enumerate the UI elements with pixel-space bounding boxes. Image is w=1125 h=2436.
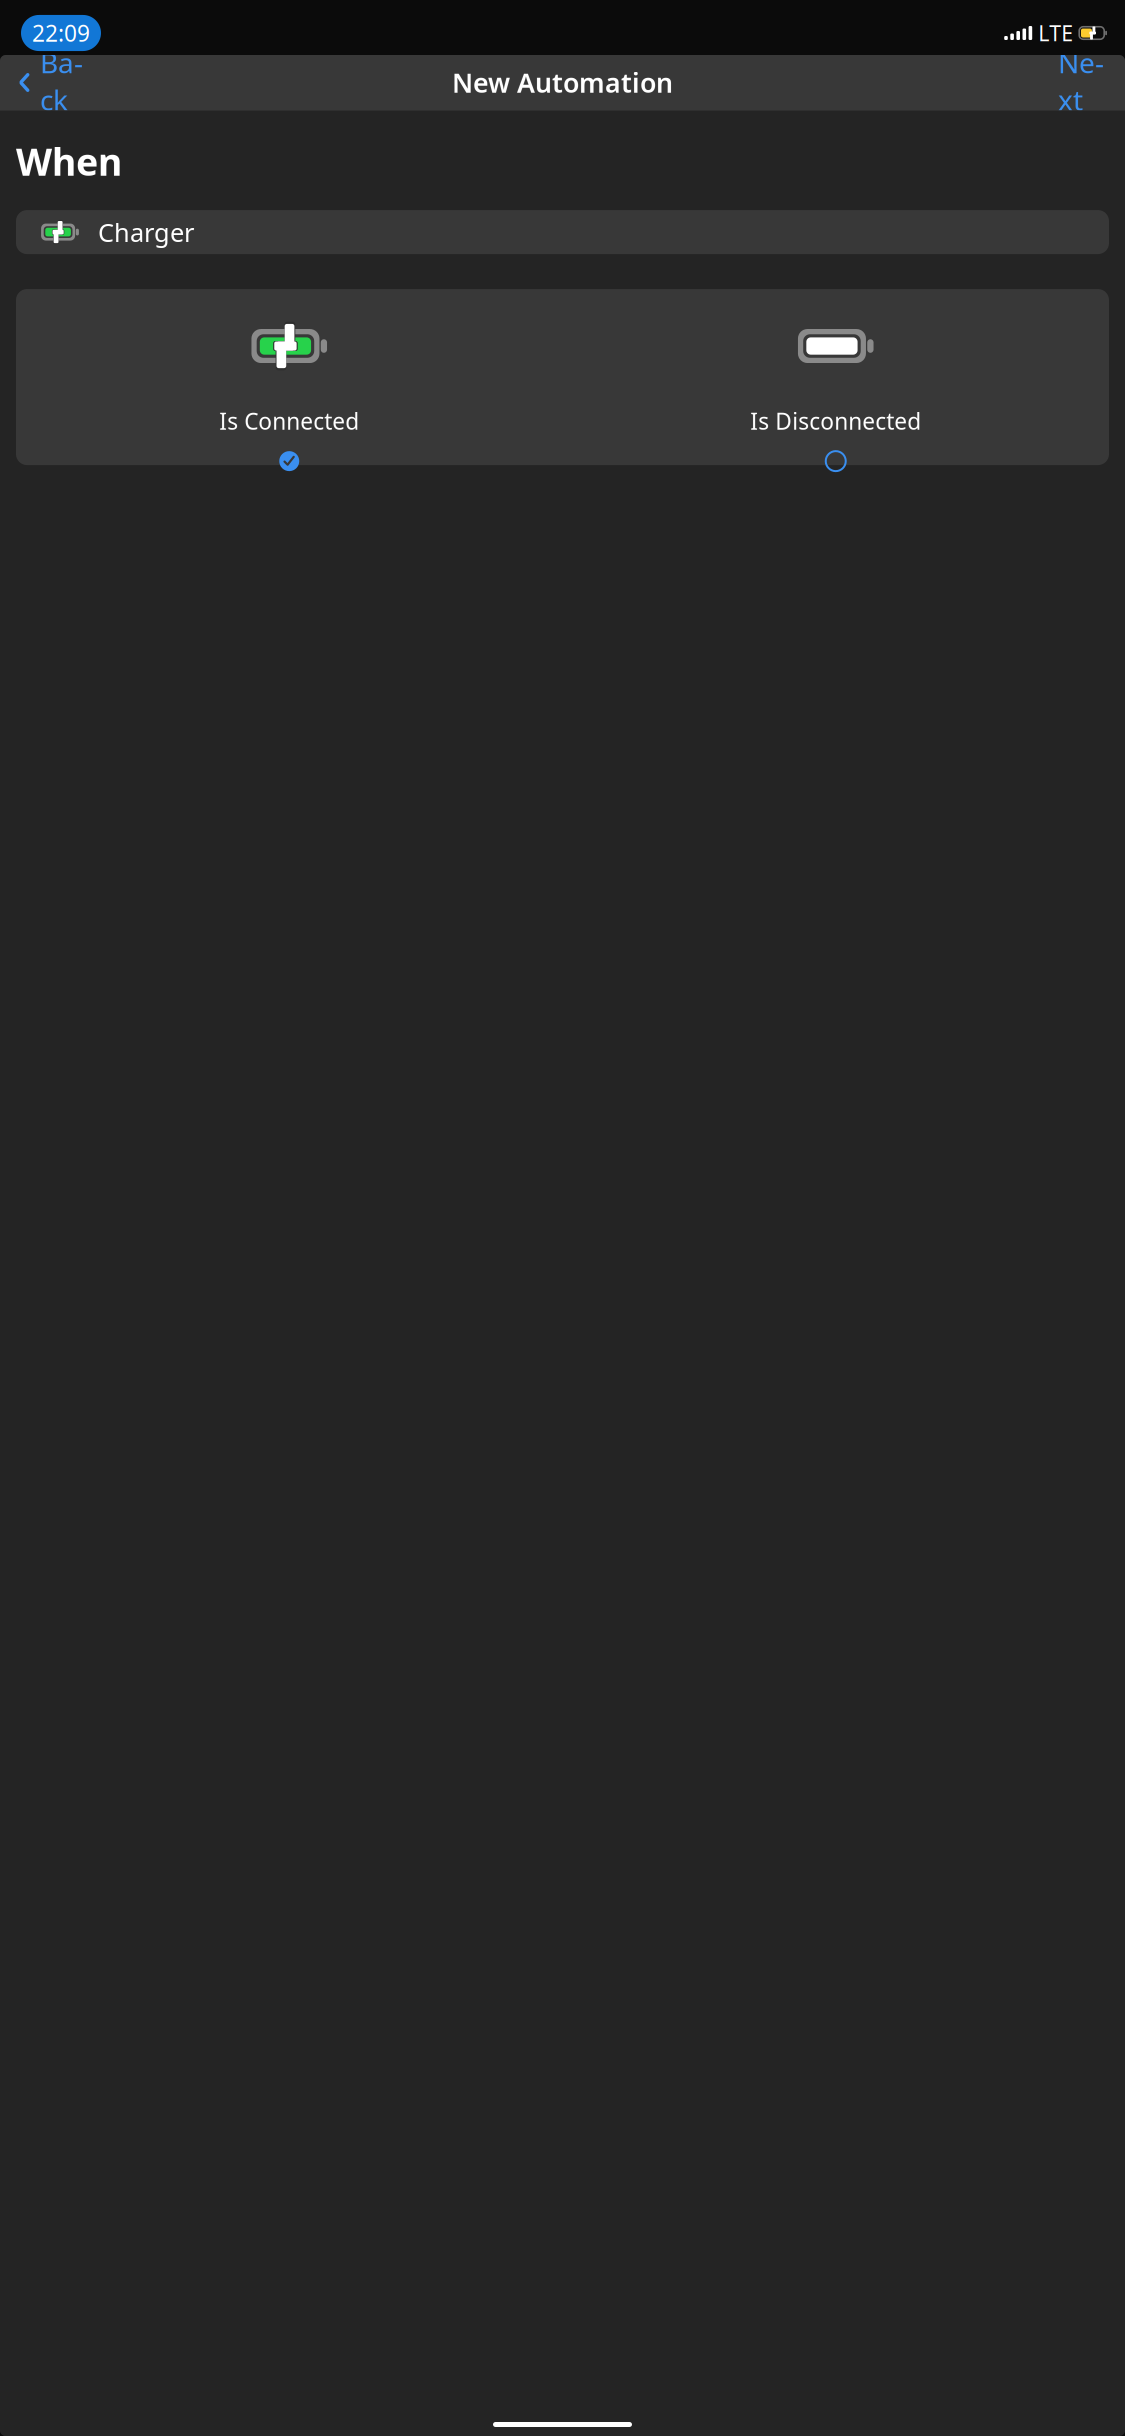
staticText: Is Connected	[219, 406, 359, 436]
staticText: 22:09	[32, 18, 90, 48]
button[interactable]: Is Connected	[16, 289, 562, 465]
staticText: Next	[1058, 44, 1104, 118]
staticText: New Automation	[452, 65, 673, 100]
button[interactable]: Next	[1043, 36, 1119, 129]
staticText: When	[16, 136, 122, 186]
staticText: Is Disconnected	[750, 406, 921, 436]
staticText: LTE	[1038, 19, 1073, 47]
button[interactable]: Is Disconnected	[562, 289, 1109, 465]
button[interactable]: Back	[6, 36, 101, 129]
staticText: Charger	[98, 215, 194, 249]
button[interactable]: Charger	[16, 210, 1109, 254]
staticText: Back	[40, 44, 83, 118]
